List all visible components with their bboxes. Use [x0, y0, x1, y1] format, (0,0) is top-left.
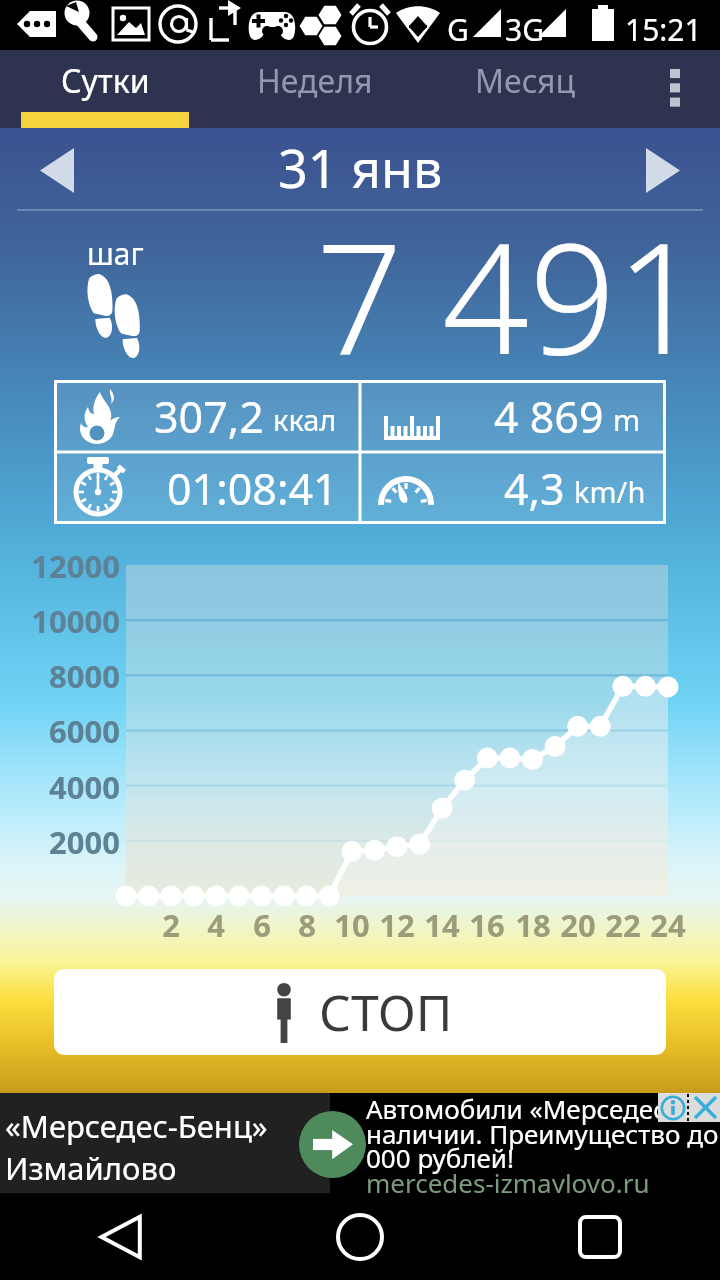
- staticText: 18: [503, 904, 563, 946]
- button[interactable]: Back: [0, 1193, 240, 1280]
- staticText: «Мерседес-Бенц»: [5, 1105, 268, 1147]
- staticText: 31 янв: [278, 132, 443, 203]
- staticText: Месяц: [475, 59, 576, 103]
- staticText: 4000: [0, 766, 120, 808]
- staticText: 20: [548, 904, 608, 946]
- staticText: 2: [141, 904, 201, 946]
- staticText: 10000: [0, 600, 120, 642]
- staticText: Неделя: [257, 59, 373, 103]
- staticText: шаг: [87, 233, 144, 274]
- button[interactable]: «Мерседес-Бенц»: [0, 1093, 720, 1193]
- staticText: G: [447, 9, 469, 50]
- button[interactable]: Next day: [620, 136, 706, 204]
- staticText: 4 869: [494, 387, 604, 446]
- button[interactable]: 4 869: [360, 380, 666, 452]
- staticText: Измайлово: [5, 1147, 177, 1189]
- button[interactable]: Previous day: [14, 136, 100, 204]
- staticText: 6000: [0, 710, 120, 752]
- button[interactable]: Месяц: [420, 50, 630, 128]
- button[interactable]: 01:08:41: [54, 452, 360, 524]
- staticText: 12000: [0, 545, 120, 587]
- staticText: Сутки: [61, 59, 150, 103]
- staticText: 4,3: [504, 459, 565, 518]
- button[interactable]: Recents: [480, 1193, 720, 1280]
- staticText: 7 491: [316, 192, 703, 361]
- staticText: mercedes-izmaylovo.ru: [366, 1165, 720, 1193]
- button[interactable]: Close ad: [690, 1093, 720, 1122]
- button[interactable]: СТОП: [54, 969, 666, 1055]
- staticText: СТОП: [319, 978, 453, 1046]
- button[interactable]: More options: [630, 50, 720, 128]
- button[interactable]: Ad info: [658, 1093, 688, 1122]
- staticText: 8: [277, 904, 337, 946]
- staticText: 22: [593, 904, 653, 946]
- staticText: 6: [232, 904, 292, 946]
- staticText: 24: [638, 904, 698, 946]
- staticText: Автомобили «Мерседес-Бенц» в: [366, 1093, 720, 1126]
- button[interactable]: Неделя: [210, 50, 420, 128]
- staticText: 8000: [0, 655, 120, 697]
- staticText: 10: [322, 904, 382, 946]
- staticText: 16: [457, 904, 517, 946]
- staticText: 000 рублей!: [366, 1140, 720, 1175]
- staticText: 4: [186, 904, 246, 946]
- button[interactable]: Home: [240, 1193, 480, 1280]
- button[interactable]: 4,3: [360, 452, 666, 524]
- staticText: 12: [367, 904, 427, 946]
- staticText: 2000: [0, 821, 120, 863]
- button[interactable]: 307,2: [54, 380, 360, 452]
- button[interactable]: Сутки: [0, 50, 210, 128]
- staticText: ккал: [273, 400, 337, 439]
- staticText: m: [613, 400, 641, 439]
- staticText: 01:08:41: [167, 459, 338, 518]
- staticText: 3G: [505, 9, 544, 50]
- staticText: наличии. Преимущество до 3 150: [366, 1116, 720, 1151]
- staticText: 15:21: [625, 9, 702, 50]
- staticText: 14: [412, 904, 472, 946]
- staticText: km/h: [574, 472, 646, 511]
- staticText: 307,2: [154, 387, 264, 446]
